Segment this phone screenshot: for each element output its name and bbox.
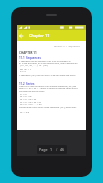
button[interactable]: Page — [37, 145, 67, 154]
staticText: SECTION 11.1 SEQUENCES — [54, 45, 80, 48]
staticText: { a1 , a2 , a3 , . . . } or { an } — [20, 64, 78, 67]
staticText: Consider the partial sums: — [19, 90, 78, 93]
staticText: s2 = a1 + a2 — [20, 95, 78, 98]
staticText: CHAPTER 11 — [19, 51, 78, 55]
staticText: s4 = a1 + a2 + a3 + a4 — [20, 101, 78, 104]
staticText: / — [56, 147, 58, 152]
staticText: form a1 + a2 + a3 + ... which is called … — [19, 87, 78, 90]
staticText: 46 — [60, 147, 65, 152]
staticText: If we try to add the terms of an infinit… — [19, 85, 78, 88]
staticText: lim an = L — [20, 68, 78, 71]
staticText: s3 = a1 + a2 + a3 — [20, 98, 78, 101]
staticText: n → ∞ — [20, 70, 78, 73]
staticText: 11.2 Series — [19, 82, 78, 86]
staticText: A sequence { an } has the limit L if we … — [19, 74, 78, 77]
staticText: These partial sums form a new sequence {… — [19, 106, 78, 109]
staticText: A sequence can be thought of as a list o… — [19, 60, 78, 63]
staticText: Chapter 11 — [29, 33, 50, 38]
staticText: s1 = a1 — [20, 93, 78, 96]
staticText: 1 — [50, 147, 53, 152]
staticText: sn = Σ ai — [20, 111, 78, 114]
button[interactable]: Back — [17, 32, 25, 40]
staticText: a1 is the first term, a2 is the second t… — [19, 62, 78, 65]
staticText: sn = a1 + a2 + . . . + an — [20, 103, 78, 106]
staticText: 11.1 Sequences — [19, 56, 78, 60]
staticText: Page — [39, 147, 48, 152]
